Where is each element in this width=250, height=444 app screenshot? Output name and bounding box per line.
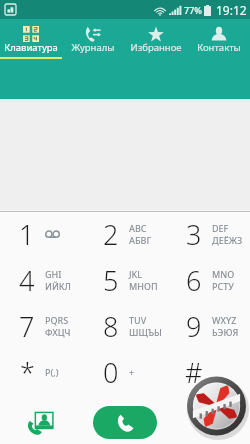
staticText: 3 — [186, 216, 202, 253]
staticText: 5 — [103, 262, 119, 299]
staticText: ФХЦЧ — [45, 326, 71, 338]
button[interactable]: * — [0, 351, 84, 397]
button[interactable]: Избранное — [124, 19, 187, 99]
staticText: 6 — [186, 262, 202, 299]
button[interactable]: 2 — [84, 213, 167, 259]
staticText: Клавиатура — [4, 41, 58, 54]
staticText: Контакты — [197, 41, 241, 54]
button[interactable]: 6 — [167, 259, 250, 305]
staticText: 8 — [103, 308, 119, 345]
button[interactable]: 5 — [84, 259, 167, 305]
button[interactable]: 8 — [84, 305, 167, 351]
staticText: АБВГ — [129, 234, 152, 246]
staticText: + — [129, 366, 135, 378]
staticText: РСТУ — [212, 280, 234, 292]
staticText: 2 — [103, 216, 119, 253]
button[interactable]: Call — [93, 406, 157, 439]
staticText: Избранное — [130, 41, 182, 54]
staticText: 9 — [186, 308, 202, 345]
staticText: ЬЭЮЯ — [212, 326, 239, 338]
staticText: МНОП — [129, 280, 158, 292]
staticText: 4 — [19, 262, 35, 299]
staticText: ИЙКЛ — [45, 280, 71, 292]
button[interactable]: 9 — [167, 305, 250, 351]
staticText: WXYZ — [212, 314, 237, 326]
staticText: JKL — [129, 268, 143, 280]
staticText: TUV — [129, 314, 147, 326]
staticText: 77% — [184, 4, 202, 16]
button[interactable]: 3 — [167, 213, 250, 259]
staticText: GHI — [45, 268, 62, 280]
staticText: P(,) — [45, 366, 59, 378]
staticText: ШЩЪЫ — [129, 326, 162, 338]
staticText: MNO — [212, 268, 235, 280]
staticText: Журналы — [71, 41, 115, 54]
staticText: # — [185, 354, 203, 391]
staticText: 0 — [103, 354, 119, 391]
button[interactable]: Журналы — [62, 19, 124, 99]
staticText: DEF — [212, 222, 229, 234]
staticText: ABC — [129, 222, 147, 234]
button[interactable]: Backspace — [194, 405, 230, 441]
button[interactable]: 1 — [0, 213, 84, 259]
staticText: 7 — [19, 308, 35, 345]
button[interactable]: # — [167, 351, 250, 397]
button[interactable]: Клавиатура — [0, 19, 62, 99]
staticText: * — [20, 354, 35, 391]
button[interactable]: 7 — [0, 305, 84, 351]
button[interactable]: Контакты — [187, 19, 250, 99]
button[interactable]: 4 — [0, 259, 84, 305]
button[interactable]: Add to contacts — [22, 405, 58, 441]
button[interactable]: 0 — [84, 351, 167, 397]
staticText: 19:12 — [216, 2, 247, 18]
staticText: PQRS — [45, 314, 69, 326]
staticText: ДЕЁЖЗ — [212, 234, 243, 246]
staticText: 1 — [19, 216, 35, 253]
